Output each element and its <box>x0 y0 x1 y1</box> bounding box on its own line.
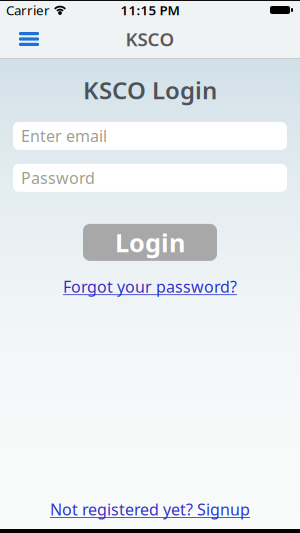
button[interactable]: Forgot your password? <box>63 276 237 297</box>
staticText: 11:15 PM <box>120 1 179 19</box>
staticText: Login <box>115 226 185 259</box>
button[interactable]: Login <box>83 224 217 261</box>
staticText: Password <box>21 167 95 188</box>
staticText: KSCO <box>125 27 174 51</box>
staticText: Carrier <box>6 1 50 19</box>
button[interactable]: Menu <box>0 21 39 57</box>
staticText: KSCO Login <box>83 74 217 106</box>
secureTextField[interactable]: Password <box>21 167 287 188</box>
textField[interactable]: Enter email <box>21 125 287 146</box>
staticText: Enter email <box>21 125 107 146</box>
button[interactable]: Not registered yet? Signup <box>50 499 250 520</box>
staticText: Not registered yet? Signup <box>50 499 250 520</box>
staticText: Forgot your password? <box>63 276 237 297</box>
